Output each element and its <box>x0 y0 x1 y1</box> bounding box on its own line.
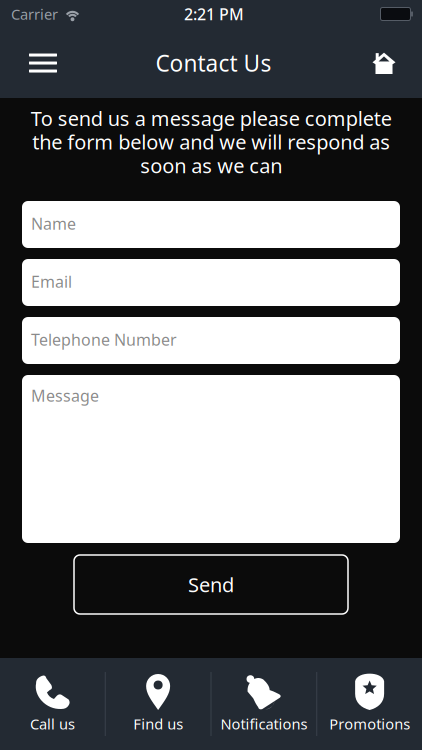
button[interactable]: Menu <box>14 31 72 95</box>
button[interactable]: Call us <box>0 658 105 750</box>
staticText: Send <box>188 571 234 598</box>
staticText: Carrier <box>11 4 58 24</box>
button[interactable]: Send <box>74 555 348 614</box>
button[interactable]: Notifications <box>211 658 316 750</box>
staticText: Message <box>31 385 99 406</box>
staticText: Promotions <box>329 714 410 733</box>
button[interactable]: Home <box>355 31 413 95</box>
staticText: 2:21 PM <box>184 3 244 25</box>
staticText: Notifications <box>220 714 307 733</box>
staticText: Email <box>31 271 72 292</box>
staticText: Find us <box>133 714 183 733</box>
staticText: Contact Us <box>155 48 271 78</box>
staticText: Call us <box>30 714 75 733</box>
staticText: Name <box>31 213 76 234</box>
button[interactable]: Promotions <box>317 658 422 750</box>
staticText: Telephone Number <box>31 329 177 350</box>
button[interactable]: Find us <box>106 658 211 750</box>
staticText: To send us a message please complete the… <box>30 105 391 179</box>
